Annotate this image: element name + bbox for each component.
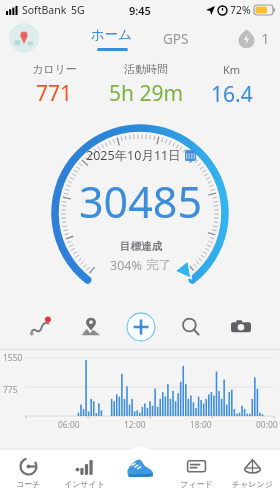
button[interactable]: Search — [166, 307, 216, 347]
button[interactable]: チャレンジ — [224, 449, 280, 497]
staticText: 1 — [261, 28, 270, 48]
button[interactable]: Add — [116, 307, 166, 347]
staticText: 完了 — [146, 257, 171, 273]
staticText: カロリー — [32, 62, 77, 76]
staticText: 30485 — [79, 172, 202, 231]
button[interactable]: Profile — [9, 23, 39, 53]
staticText: Km — [223, 62, 241, 77]
other: Streak — [237, 29, 256, 48]
button[interactable]: Streak — [237, 28, 270, 48]
staticText: 活動時間 — [124, 62, 168, 76]
staticText: 06:00 — [58, 419, 80, 431]
staticText: GPS — [163, 30, 189, 48]
button[interactable]: ホーム — [87, 26, 137, 51]
staticText: 18:00 — [190, 419, 212, 431]
staticText: 1550 — [3, 352, 23, 364]
staticText: 771 — [36, 79, 73, 108]
button[interactable]: Activity — [112, 449, 168, 497]
staticText: 16.4 — [211, 80, 253, 109]
button[interactable]: GPS — [159, 28, 193, 50]
button[interactable]: Map — [65, 307, 116, 347]
staticText: SoftBank — [22, 3, 67, 17]
button[interactable]: インサイト — [56, 449, 112, 497]
staticText: 12:00 — [124, 419, 146, 431]
button[interactable]: Camera — [216, 307, 266, 347]
button[interactable]: フィード — [168, 449, 224, 497]
staticText: チャレンジ — [232, 479, 273, 489]
button[interactable]: 活動時間 — [97, 62, 195, 108]
button[interactable]: 2025年10月11日 — [0, 115, 280, 305]
button[interactable]: コーチ — [0, 449, 56, 497]
button[interactable]: 1550 — [0, 350, 280, 432]
staticText: 5G — [71, 3, 85, 17]
staticText: コーチ — [16, 479, 41, 489]
button[interactable]: Km — [195, 62, 268, 109]
staticText: 9:45 — [129, 3, 151, 18]
staticText: 775 — [3, 384, 18, 396]
button[interactable]: カロリー — [12, 62, 97, 108]
button[interactable]: Routes — [14, 307, 65, 347]
staticText: 304% — [110, 257, 146, 274]
staticText: 72% — [230, 3, 251, 17]
staticText: 00:00 — [256, 419, 278, 431]
staticText: 目標達成 — [120, 240, 162, 253]
staticText: インサイト — [64, 479, 105, 489]
staticText: 5h 29m — [109, 79, 184, 108]
staticText: ホーム — [91, 26, 133, 43]
staticText: 2025年10月11日 — [86, 147, 181, 164]
staticText: フィード — [180, 479, 213, 489]
